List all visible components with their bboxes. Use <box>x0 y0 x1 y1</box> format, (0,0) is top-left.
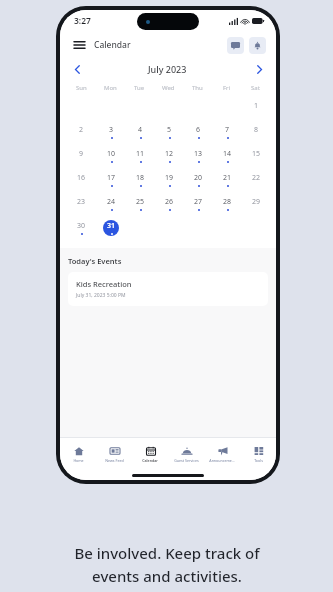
button[interactable]: Kids Recreation <box>68 272 268 306</box>
staticText: Fri <box>223 84 231 92</box>
button[interactable]: 28 <box>217 193 237 215</box>
staticText: July 2023 <box>148 63 187 75</box>
button[interactable]: 23 <box>71 193 91 215</box>
staticText: Calendar <box>94 39 131 51</box>
button[interactable]: 8 <box>246 121 266 143</box>
staticText: 1 <box>254 101 259 111</box>
staticText: 3 <box>109 125 114 135</box>
staticText: 6 <box>196 125 201 135</box>
button[interactable]: Calendar <box>132 438 168 470</box>
staticText: Mon <box>104 84 117 92</box>
staticText: 5 <box>167 125 172 135</box>
staticText: 15 <box>252 149 261 159</box>
button[interactable]: 17 <box>101 169 121 191</box>
staticText: News Feed <box>105 458 124 463</box>
staticText: 24 <box>107 197 116 207</box>
button[interactable]: 6 <box>188 121 208 143</box>
button[interactable]: 12 <box>159 145 179 167</box>
staticText: 29 <box>252 197 261 207</box>
button[interactable]: Menu <box>70 36 88 54</box>
staticText: 31 <box>107 221 116 231</box>
staticText: 27 <box>194 197 203 207</box>
button[interactable]: Guest Services <box>168 438 204 470</box>
staticText: Tools <box>254 458 263 463</box>
button[interactable]: 10 <box>101 145 121 167</box>
staticText: 19 <box>165 173 174 183</box>
button[interactable]: 21 <box>217 169 237 191</box>
button[interactable]: Messages <box>227 37 244 54</box>
staticText: 21 <box>223 173 232 183</box>
button[interactable]: 11 <box>130 145 150 167</box>
staticText: Wed <box>162 84 175 92</box>
button[interactable]: 16 <box>71 169 91 191</box>
button[interactable]: 22 <box>246 169 266 191</box>
staticText: Home <box>73 458 84 463</box>
staticText: July 31, 2023 5:00 PM <box>76 292 126 299</box>
staticText: 10 <box>107 149 116 159</box>
button[interactable]: 30 <box>71 217 91 239</box>
button[interactable]: 1 <box>246 97 266 119</box>
button[interactable]: 5 <box>159 121 179 143</box>
staticText: 28 <box>223 197 232 207</box>
button[interactable]: 14 <box>217 145 237 167</box>
staticText: 7 <box>225 125 230 135</box>
staticText: Kids Recreation <box>76 279 132 289</box>
staticText: 11 <box>136 149 145 159</box>
button[interactable]: 7 <box>217 121 237 143</box>
staticText: Calendar <box>142 458 158 463</box>
button[interactable]: Announceme… <box>204 438 240 470</box>
button[interactable]: 25 <box>130 193 150 215</box>
button[interactable]: 2 <box>71 121 91 143</box>
staticText: 13 <box>194 149 203 159</box>
staticText: events and activities. <box>92 566 242 586</box>
button[interactable]: 15 <box>246 145 266 167</box>
button[interactable]: Next month <box>252 62 266 76</box>
staticText: 4 <box>138 125 143 135</box>
button[interactable]: 4 <box>130 121 150 143</box>
staticText: Guest Services <box>174 458 199 463</box>
button[interactable]: News Feed <box>96 438 132 470</box>
staticText: 20 <box>194 173 203 183</box>
staticText: 14 <box>223 149 232 159</box>
button[interactable]: 24 <box>101 193 121 215</box>
staticText: Announceme… <box>209 458 235 463</box>
staticText: 17 <box>107 173 116 183</box>
button[interactable]: 20 <box>188 169 208 191</box>
staticText: 3:27 <box>74 15 91 27</box>
staticText: 18 <box>136 173 145 183</box>
button[interactable]: 19 <box>159 169 179 191</box>
staticText: 8 <box>254 125 259 135</box>
staticText: 22 <box>252 173 261 183</box>
button[interactable]: Notifications <box>249 37 266 54</box>
button[interactable]: Home <box>60 438 96 470</box>
staticText: Be involved. Keep track of <box>74 543 260 563</box>
staticText: 30 <box>77 221 86 231</box>
staticText: Thu <box>192 84 203 92</box>
staticText: 12 <box>165 149 174 159</box>
staticText: 26 <box>165 197 174 207</box>
button[interactable]: 9 <box>71 145 91 167</box>
staticText: 25 <box>136 197 145 207</box>
button[interactable]: 26 <box>159 193 179 215</box>
button[interactable]: 3 <box>101 121 121 143</box>
staticText: Tue <box>134 84 145 92</box>
button[interactable]: 31 <box>101 217 121 239</box>
staticText: 23 <box>77 197 86 207</box>
button[interactable]: 27 <box>188 193 208 215</box>
staticText: Today's Events <box>68 256 122 266</box>
button[interactable]: Previous month <box>70 62 84 76</box>
staticText: 2 <box>79 125 84 135</box>
staticText: Sun <box>76 84 87 92</box>
button[interactable]: 18 <box>130 169 150 191</box>
button[interactable]: Tools <box>240 438 276 470</box>
staticText: Sat <box>251 84 260 92</box>
button[interactable]: 13 <box>188 145 208 167</box>
staticText: 16 <box>77 173 86 183</box>
staticText: 9 <box>79 149 84 159</box>
button[interactable]: 29 <box>246 193 266 215</box>
